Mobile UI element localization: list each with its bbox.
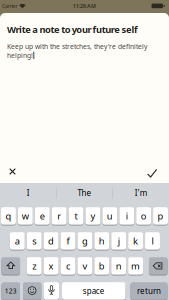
staticText: z [32,260,36,272]
button[interactable] [149,257,167,275]
button[interactable]: return [130,282,167,300]
staticText: helping! [7,51,33,60]
button[interactable]: 123 [1,282,20,300]
staticText: j [118,235,120,247]
staticText: q [5,210,11,222]
staticText: n [116,260,122,272]
staticText: k [133,235,138,247]
staticText: c [66,260,70,272]
staticText: Write a note to your future self [7,23,138,36]
staticText: r [57,210,61,222]
staticText: o [141,210,147,222]
button[interactable]: k [128,232,143,250]
button[interactable]: f [60,232,75,250]
button[interactable]: j [111,232,126,250]
button[interactable] [43,282,59,300]
button[interactable]: I [1,184,55,202]
button[interactable]: u [102,207,117,225]
button[interactable]: m [128,257,143,275]
staticText: s [32,235,36,247]
button[interactable]: g [77,232,92,250]
button[interactable]: I'm [114,184,168,202]
staticText: g [82,235,88,247]
button[interactable]: space [62,282,125,300]
button[interactable]: b [94,257,109,275]
button[interactable]: c [60,257,75,275]
staticText: x [49,260,54,272]
staticText: a [15,235,20,247]
staticText: Keep up with the stretches, they're defi… [7,42,147,51]
staticText: The [77,188,91,198]
staticText: t [74,210,77,222]
button[interactable]: The [57,184,111,202]
button[interactable]: q [1,207,16,225]
staticText: b [99,260,105,272]
button[interactable]: y [85,207,100,225]
button[interactable]: e [35,207,50,225]
staticText: d [48,235,54,247]
button[interactable]: o [136,207,151,225]
staticText: I'm [135,188,147,198]
button[interactable]: i [119,207,134,225]
staticText: space [83,286,105,296]
staticText: return [137,286,161,296]
staticText: y [90,210,95,222]
button[interactable]: p [153,207,168,225]
button[interactable]: v [77,257,92,275]
staticText: m [131,260,140,272]
button[interactable] [23,282,41,300]
staticText: e [40,210,45,222]
button[interactable]: h [94,232,109,250]
button[interactable] [5,164,19,178]
button[interactable] [145,166,159,180]
button[interactable]: d [44,232,58,250]
staticText: I [27,188,30,198]
staticText: f [66,235,69,247]
staticText: i [126,210,128,222]
staticText: v [82,260,87,272]
staticText: u [107,210,113,222]
button[interactable]: l [145,232,160,250]
staticText: h [99,235,105,247]
button[interactable]: n [111,257,126,275]
staticText: w [22,210,29,222]
staticText: Carrier [2,2,17,10]
button[interactable]: r [52,207,67,225]
staticText: l [151,235,153,247]
button[interactable]: w [18,207,33,225]
button[interactable]: z [27,257,42,275]
button[interactable]: x [44,257,58,275]
button[interactable] [1,257,20,275]
button[interactable]: t [69,207,83,225]
staticText: p [157,210,163,222]
button[interactable]: s [27,232,42,250]
staticText: 11:26 AM [73,2,96,10]
staticText: 123 [5,286,17,295]
button[interactable]: a [10,232,25,250]
